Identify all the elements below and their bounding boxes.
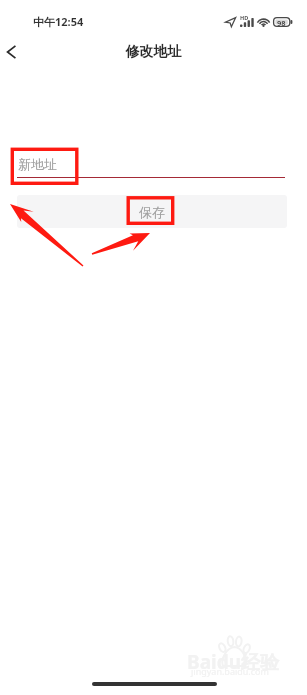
staticText: 新地址 xyxy=(18,156,57,172)
staticText: 中午12:54 xyxy=(33,14,84,29)
button[interactable]: 新地址 xyxy=(0,148,307,178)
staticText: HD xyxy=(240,14,249,21)
staticText: jingyan.baidu.com xyxy=(191,665,269,677)
button[interactable]: 保存 xyxy=(17,195,287,228)
staticText: 修改地址 xyxy=(0,43,307,61)
staticText: 98 xyxy=(277,18,286,28)
button[interactable]: Back xyxy=(0,35,28,69)
staticText: Baidu经验 xyxy=(187,649,280,675)
staticText: 保存 xyxy=(139,204,165,220)
